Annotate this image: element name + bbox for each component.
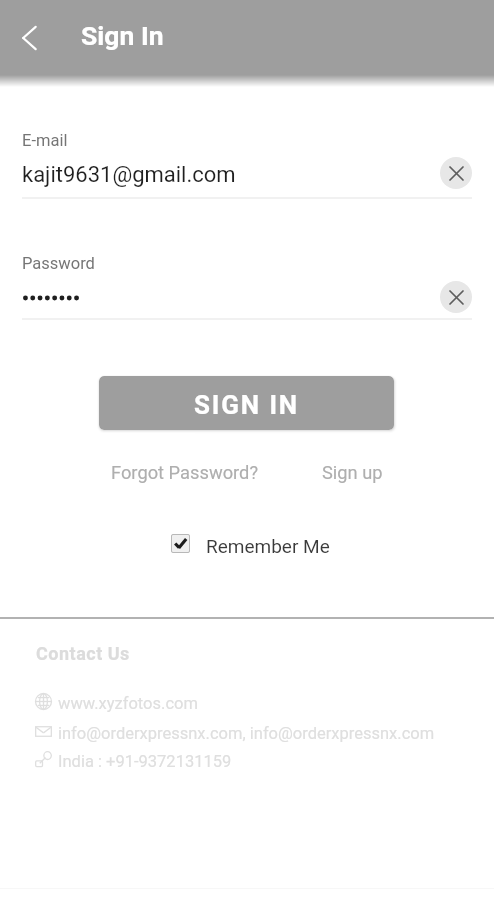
staticText: Remember Me [206, 535, 330, 557]
button[interactable]: Back [0, 0, 58, 75]
staticText: SIGN IN [194, 390, 300, 420]
button[interactable]: Sign up [322, 462, 383, 483]
staticText: www.xyzfotos.com [58, 694, 198, 713]
staticText: kajit9631@gmail.com [22, 162, 236, 188]
staticText: Password [22, 254, 95, 273]
staticText: Contact Us [36, 643, 130, 664]
button[interactable]: Clear [440, 281, 472, 313]
staticText: Sign up [322, 462, 383, 483]
staticText: info@orderxpressnx.com, info@orderxpress… [58, 724, 435, 743]
staticText: E-mail [22, 131, 68, 150]
button[interactable]: Remember Me [171, 532, 330, 554]
button[interactable]: Clear [440, 157, 472, 189]
staticText: India : +91-9372131159 [58, 752, 232, 771]
staticText: Sign In [81, 20, 164, 51]
button[interactable]: Forgot Password? [111, 462, 259, 483]
staticText: Forgot Password? [111, 462, 259, 483]
button[interactable]: SIGN IN [99, 376, 394, 430]
